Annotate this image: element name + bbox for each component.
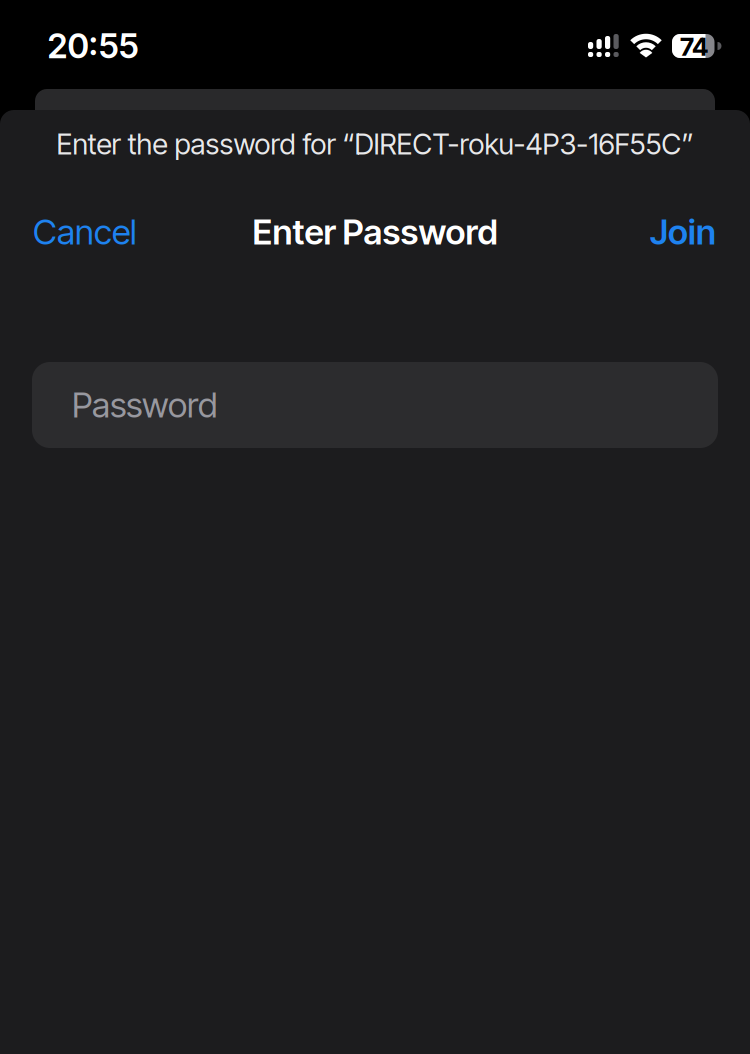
staticText: Password (72, 384, 217, 426)
staticText: 20:55 (47, 25, 138, 66)
staticText: Enter the password for “DIRECT-roku-4P3-… (56, 127, 693, 161)
button[interactable]: Join (650, 211, 716, 253)
staticText: Cancel (33, 211, 137, 253)
staticText: Enter Password (252, 211, 497, 253)
staticText: 74 (680, 31, 708, 62)
staticText: Join (650, 211, 716, 253)
button[interactable]: Cancel (33, 211, 137, 253)
button[interactable]: Password (32, 362, 718, 448)
